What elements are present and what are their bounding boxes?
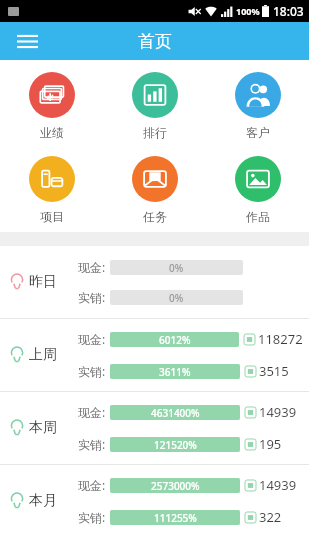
- staticText: 3515: [259, 362, 289, 380]
- staticText: 18:03: [273, 3, 304, 19]
- staticText: 3611%: [159, 365, 191, 379]
- button[interactable]: 上周: [0, 319, 309, 391]
- staticText: 首页: [138, 31, 172, 52]
- button[interactable]: Menu: [10, 24, 44, 58]
- staticText: 业绩: [40, 125, 64, 140]
- staticText: 任务: [143, 209, 167, 224]
- staticText: 现金:: [78, 404, 106, 420]
- staticText: 实销:: [78, 289, 106, 305]
- staticText: 客户: [246, 125, 270, 140]
- staticText: 排行: [143, 125, 167, 140]
- staticText: 2573000%: [151, 479, 200, 493]
- staticText: 实销:: [78, 509, 106, 525]
- staticText: 作品: [246, 209, 270, 224]
- staticText: 6012%: [159, 333, 191, 347]
- button[interactable]: 本周: [0, 392, 309, 464]
- staticText: 项目: [40, 209, 64, 224]
- staticText: 100%: [236, 5, 260, 17]
- staticText: 0%: [169, 261, 184, 275]
- staticText: 现金:: [78, 477, 106, 493]
- button[interactable]: 客户: [206, 70, 309, 142]
- staticText: 现金:: [78, 331, 106, 347]
- staticText: 195: [259, 435, 282, 453]
- staticText: 上周: [29, 346, 57, 364]
- button[interactable]: 排行: [103, 70, 206, 142]
- staticText: 实销:: [78, 363, 106, 379]
- staticText: 14939: [259, 476, 297, 494]
- staticText: 118272: [258, 330, 303, 348]
- staticText: 0%: [169, 291, 184, 305]
- staticText: 现金:: [78, 259, 106, 275]
- staticText: 322: [259, 508, 282, 526]
- staticText: 昨日: [29, 273, 57, 291]
- button[interactable]: 本月: [0, 465, 309, 537]
- staticText: 本月: [29, 492, 57, 510]
- staticText: 121520%: [154, 438, 197, 452]
- button[interactable]: 项目: [0, 154, 103, 226]
- staticText: 4631400%: [151, 406, 200, 420]
- staticText: 111255%: [154, 511, 197, 525]
- button[interactable]: 任务: [103, 154, 206, 226]
- button[interactable]: 业绩: [0, 70, 103, 142]
- staticText: 实销:: [78, 436, 106, 452]
- button[interactable]: 昨日: [0, 246, 309, 318]
- button[interactable]: 作品: [206, 154, 309, 226]
- staticText: 14939: [259, 403, 297, 421]
- staticText: 本周: [29, 419, 57, 437]
